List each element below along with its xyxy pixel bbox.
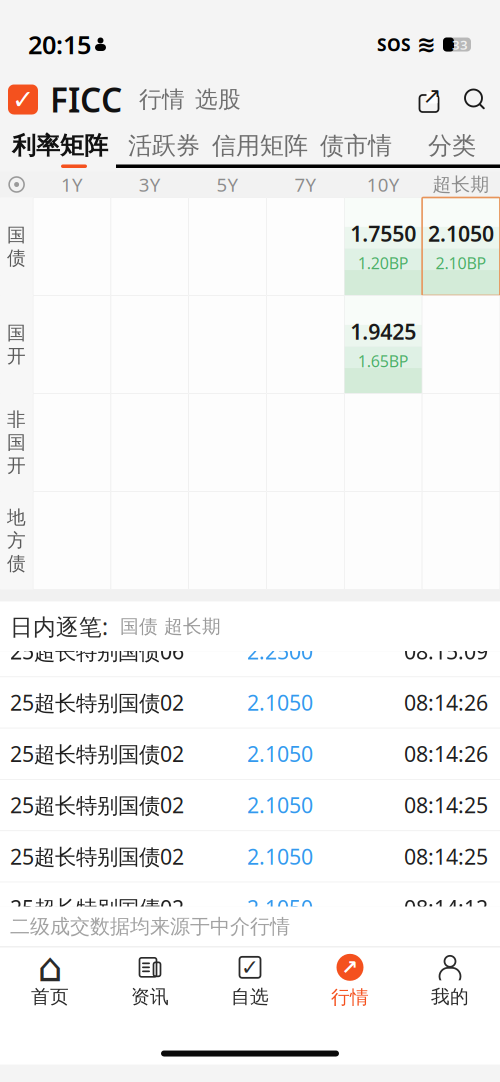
button[interactable]: Share <box>412 82 446 116</box>
staticText: ≋ <box>417 32 436 57</box>
staticText: 日内逐笔: <box>10 611 108 641</box>
staticText: 超长期 <box>432 173 489 196</box>
staticText: 2.2500 <box>247 637 313 665</box>
staticText: 2.1050 <box>428 219 494 247</box>
staticText: 08:15:09 <box>404 637 488 665</box>
button[interactable]: ⌂ <box>0 950 100 1012</box>
button[interactable]: 信用矩阵 <box>212 127 308 171</box>
button[interactable]: Search <box>458 82 492 116</box>
button[interactable]: ↗ <box>300 950 400 1012</box>
button[interactable]: 我的 <box>400 950 500 1012</box>
staticText: 2.1050 <box>247 791 313 819</box>
staticText: 资讯 <box>131 985 169 1008</box>
staticText: 10Y <box>367 172 400 197</box>
staticText: 地方债 <box>7 506 26 575</box>
staticText: 1Y <box>61 172 83 197</box>
staticText: 7Y <box>294 172 316 197</box>
staticText: ↗ <box>422 83 441 108</box>
staticText: 3Y <box>139 172 161 197</box>
staticText: 信用矩阵 <box>212 131 308 160</box>
button[interactable]: 分类 <box>404 127 500 171</box>
staticText: 08:14:26 <box>404 688 488 717</box>
button[interactable]: 债市情 <box>308 127 404 171</box>
button[interactable]: 25超长特别国债02 <box>0 830 500 882</box>
button[interactable]: 利率矩阵 <box>4 127 116 171</box>
staticText: 25超长特别国债02 <box>10 688 184 717</box>
staticText: ✓ <box>241 955 259 979</box>
staticText: 2.10BP <box>435 252 486 274</box>
staticText: 5Y <box>217 172 239 197</box>
staticText: 08:14:26 <box>404 740 488 768</box>
staticText: 分类 <box>428 131 476 160</box>
staticText: 08:14:25 <box>404 791 488 819</box>
staticText: ⌂ <box>37 945 62 990</box>
staticText: 我的 <box>431 985 469 1008</box>
staticText: ✓ <box>12 84 34 115</box>
button[interactable]: 行情 <box>134 82 190 117</box>
staticText: 行情 <box>331 986 369 1009</box>
staticText: 25超长特别国债02 <box>10 740 184 768</box>
staticText: 2.1050 <box>247 893 313 922</box>
staticText: 25超长特别国债06 <box>10 637 184 665</box>
button[interactable]: ✓ <box>200 950 300 1012</box>
staticText: 1.20BP <box>358 252 409 274</box>
staticText: 行情 <box>139 86 185 113</box>
staticText: 2.1050 <box>247 740 313 768</box>
staticText: 国债 <box>7 224 26 269</box>
staticText: 1.65BP <box>358 350 409 372</box>
staticText: 债市情 <box>320 131 392 160</box>
staticText: 25超长特别国债02 <box>10 893 184 922</box>
button[interactable]: 25超长特别国债06 <box>0 625 500 676</box>
staticText: 二级成交数据均来源于中介行情 <box>10 914 290 939</box>
button[interactable]: 25超长特别国债02 <box>0 882 500 933</box>
staticText: SOS <box>377 33 411 56</box>
staticText: 20:15 <box>28 28 91 61</box>
staticText: 自选 <box>231 985 269 1008</box>
button[interactable]: 活跃券 <box>116 127 212 171</box>
staticText: 国开 <box>7 322 26 367</box>
staticText: 08:14:25 <box>404 842 488 870</box>
staticText: 2.1050 <box>247 688 313 717</box>
button[interactable]: 选股 <box>190 82 246 117</box>
button[interactable]: 25超长特别国债02 <box>0 779 500 830</box>
staticText: 08:14:12 <box>404 893 488 922</box>
staticText: 1.7550 <box>350 219 416 247</box>
button[interactable]: 25超长特别国债02 <box>0 728 500 779</box>
staticText: 25超长特别国债02 <box>10 842 184 870</box>
staticText: FICC <box>50 77 122 122</box>
staticText: 首页 <box>31 985 69 1008</box>
staticText: 1.9425 <box>350 317 416 345</box>
staticText: 25超长特别国债02 <box>10 791 184 819</box>
staticText: 33 <box>452 36 468 53</box>
staticText: 国债 超长期 <box>120 615 221 638</box>
staticText: 活跃券 <box>128 131 200 160</box>
staticText: 非国开 <box>7 408 26 477</box>
button[interactable]: 资讯 <box>100 950 200 1012</box>
button[interactable]: 25超长特别国债02 <box>0 676 500 728</box>
staticText: 2.1050 <box>247 842 313 870</box>
staticText: 利率矩阵 <box>12 131 108 160</box>
staticText: 选股 <box>195 86 241 113</box>
staticText: ↗ <box>341 956 358 979</box>
